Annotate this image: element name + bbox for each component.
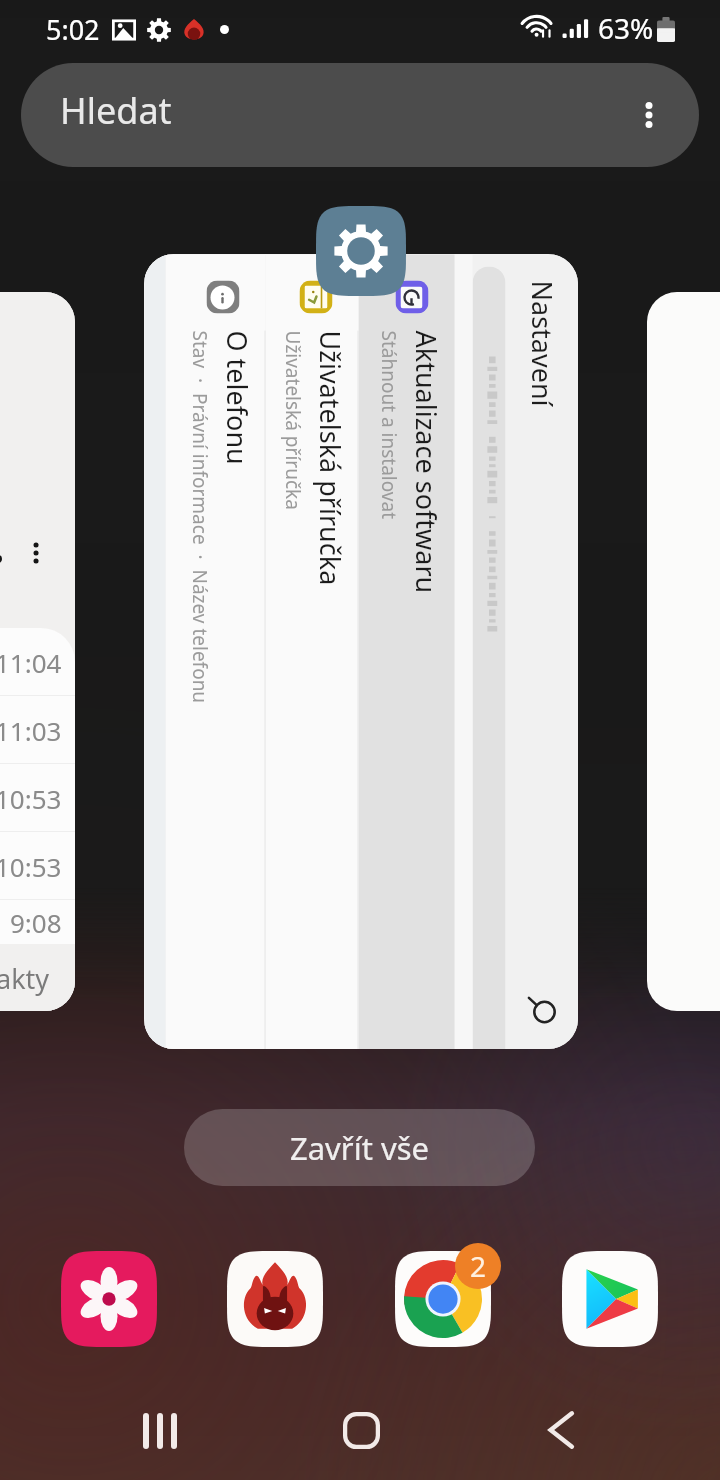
staticText: 5:02 [46, 11, 100, 48]
staticText: 10:53 [0, 849, 62, 884]
button[interactable]: Recent app [647, 292, 720, 1011]
staticText: Stáhnout a instalovat [375, 330, 401, 519]
staticText: O telefonu [218, 330, 255, 465]
staticText: Nastavení [523, 280, 560, 407]
staticText: Uživatelská příručka [279, 330, 305, 510]
staticText: 2 [470, 1247, 487, 1285]
staticText: 9:08 [10, 905, 62, 940]
button[interactable]: Telefon recent app [0, 292, 75, 1011]
staticText: Hledat [60, 86, 172, 135]
staticText: Zavřít vše [290, 1127, 430, 1169]
staticText: Uživatelská příručka [311, 330, 348, 585]
button[interactable]: Home [319, 1388, 403, 1472]
staticText: 11:04 [0, 645, 62, 680]
staticText: Aktualizace softwaru [407, 330, 444, 593]
button[interactable]: Chrome [395, 1251, 491, 1347]
button[interactable]: O telefonu [165, 254, 265, 1049]
button[interactable]: Hledat [21, 63, 699, 167]
button[interactable]: Nastavení [316, 206, 406, 296]
button[interactable]: More options [619, 85, 679, 145]
button[interactable]: AnTuTu Benchmark [227, 1251, 323, 1347]
button[interactable]: Galerie [61, 1251, 157, 1347]
button[interactable]: Nastavení recent app [144, 254, 578, 1049]
staticText: akty [0, 960, 50, 997]
staticText: Stav · Právní informace · Název telefonu [186, 330, 212, 703]
staticText: 63% [598, 9, 654, 47]
button[interactable]: Recent apps [118, 1389, 202, 1473]
button[interactable]: Uživatelská příručka [265, 254, 358, 1049]
staticText: 10:53 [0, 781, 62, 816]
staticText: 11:03 [0, 713, 62, 748]
button[interactable]: Aktualizace softwaru [358, 254, 454, 1049]
button[interactable]: Back [519, 1388, 603, 1472]
button[interactable]: Obchod Play [562, 1251, 658, 1347]
button[interactable]: Zavřít vše [184, 1109, 535, 1186]
